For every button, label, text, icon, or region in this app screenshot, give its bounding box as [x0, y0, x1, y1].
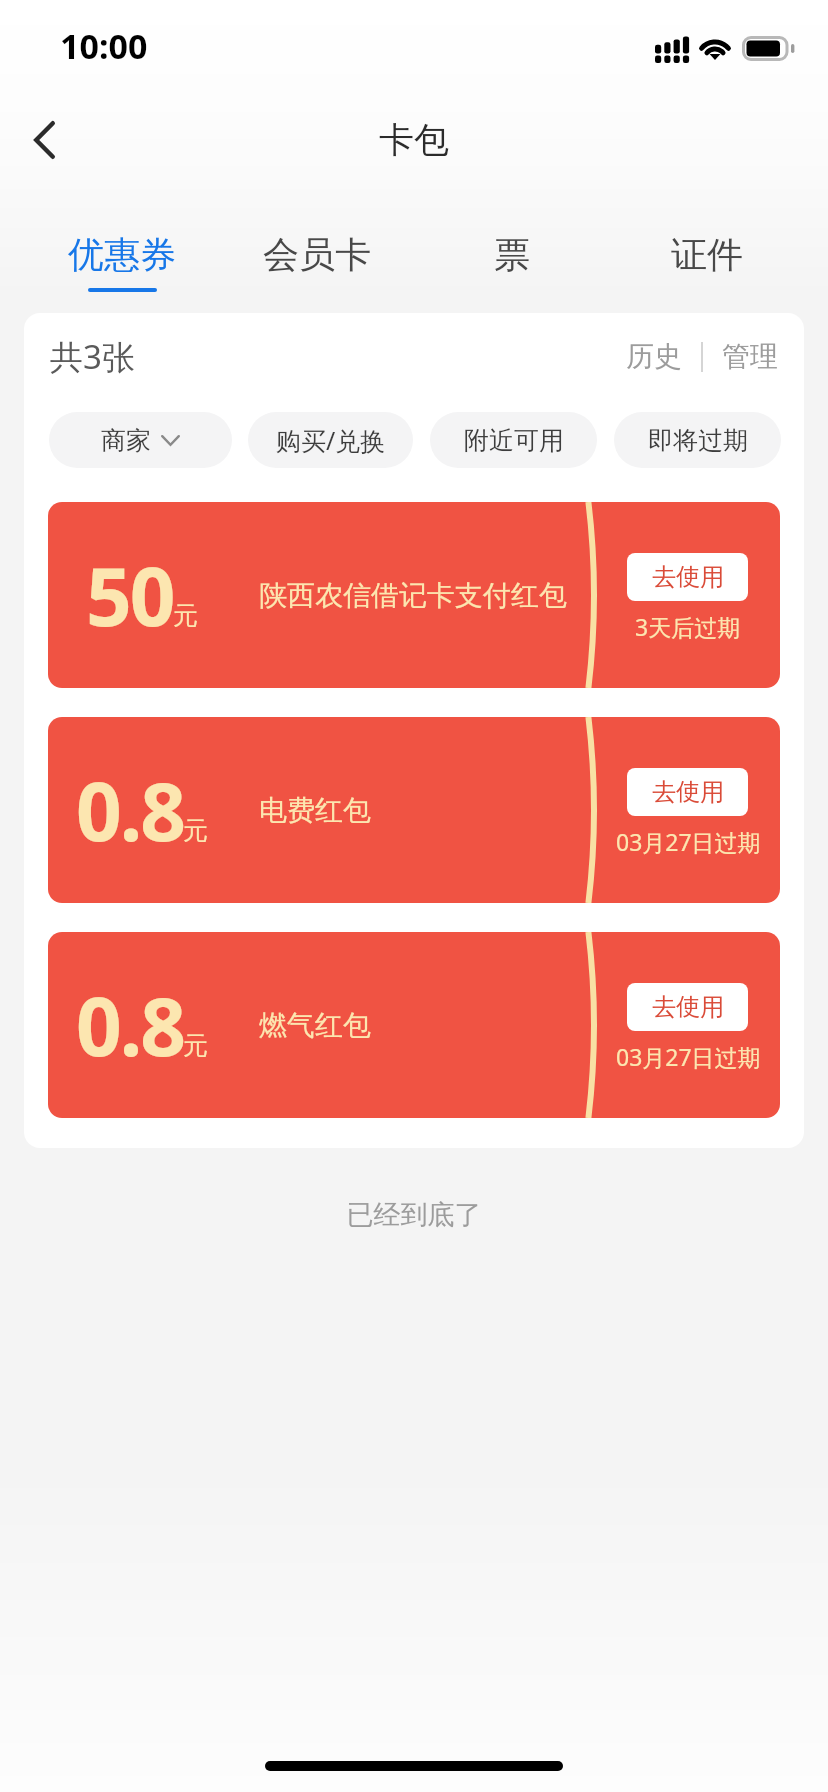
staticText: 3天后过期 [635, 611, 741, 642]
button[interactable]: 去使用 [627, 553, 748, 601]
button[interactable]: 证件 [609, 190, 804, 292]
button[interactable]: 历史 [617, 331, 691, 382]
staticText: 票 [494, 232, 530, 277]
button[interactable]: 去使用 [627, 768, 748, 816]
button[interactable]: 优惠券 [24, 190, 219, 292]
staticText: 0.8 [76, 755, 184, 864]
button[interactable]: 0.8 [48, 717, 780, 903]
staticText: 购买/兑换 [276, 423, 386, 457]
staticText: 共3张 [50, 334, 135, 379]
staticText: 燃气红包 [259, 1008, 371, 1043]
button[interactable]: 管理 [713, 331, 787, 382]
button[interactable]: 附近可用 [430, 412, 597, 468]
staticText: 50 [86, 540, 174, 649]
staticText: 0.8 [76, 970, 184, 1079]
staticText: 优惠券 [68, 232, 176, 277]
button[interactable]: 购买/兑换 [248, 412, 413, 468]
staticText: 去使用 [652, 562, 724, 592]
staticText: 元 [183, 815, 208, 846]
button[interactable]: 票 [414, 190, 609, 292]
staticText: 03月27日过期 [616, 826, 761, 857]
button[interactable]: 会员卡 [219, 190, 414, 292]
staticText: 10:00 [60, 23, 148, 69]
staticText: 证件 [671, 232, 743, 277]
staticText: 管理 [722, 339, 778, 374]
button[interactable]: 去使用 [627, 983, 748, 1031]
staticText: 去使用 [652, 992, 724, 1022]
button[interactable]: 0.8 [48, 932, 780, 1118]
staticText: 会员卡 [263, 232, 371, 277]
staticText: 附近可用 [464, 425, 564, 456]
button[interactable]: 50 [48, 502, 780, 688]
staticText: 03月27日过期 [616, 1041, 761, 1072]
staticText: 电费红包 [259, 793, 371, 828]
staticText: 已经到底了 [0, 1198, 828, 1232]
staticText: 卡包 [379, 118, 449, 162]
staticText: 元 [183, 1030, 208, 1061]
button[interactable]: Back [6, 102, 82, 178]
button[interactable]: 商家 [49, 412, 232, 468]
staticText: 陕西农信借记卡支付红包 [259, 578, 567, 613]
button[interactable]: 即将过期 [614, 412, 781, 468]
staticText: 去使用 [652, 777, 724, 807]
staticText: 历史 [626, 339, 682, 374]
staticText: 商家 [101, 425, 151, 456]
staticText: 即将过期 [648, 425, 748, 456]
staticText: 元 [173, 600, 198, 631]
